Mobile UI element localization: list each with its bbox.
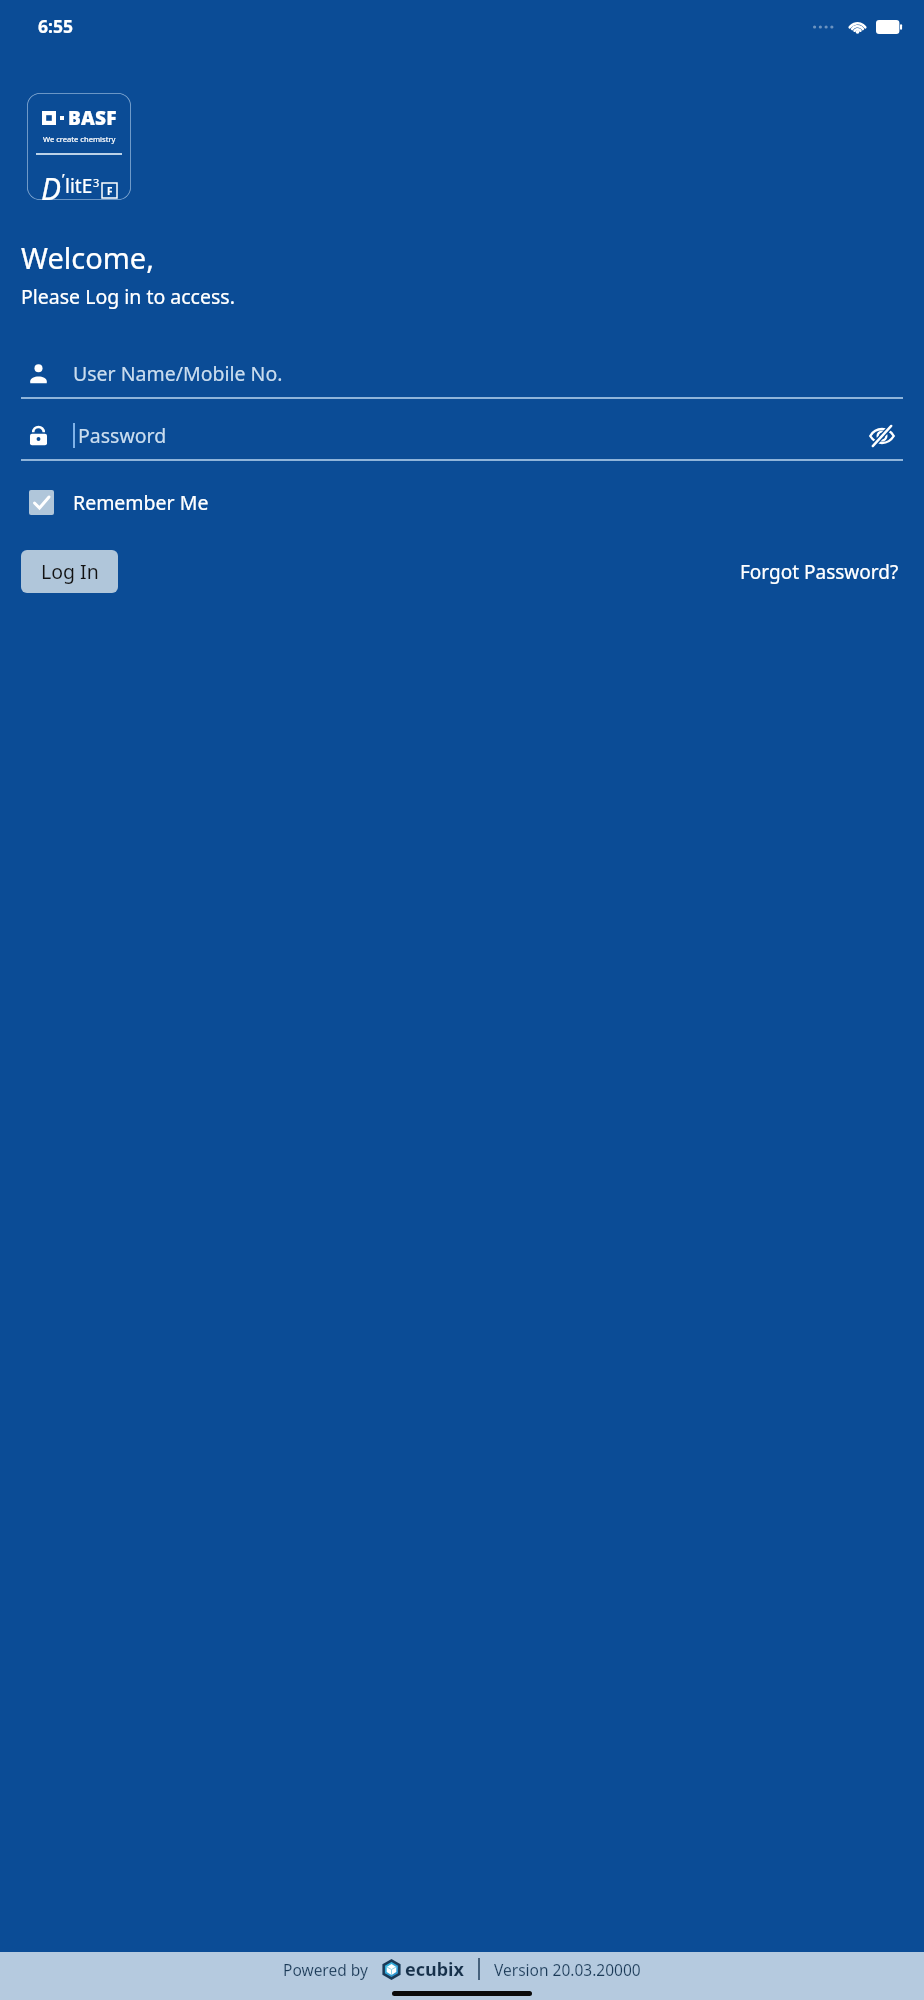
staticText: 3	[93, 175, 100, 190]
staticText: We create chemistry	[43, 134, 116, 144]
staticText: Remember Me	[73, 489, 209, 516]
button[interactable]: Forgot Password?	[736, 555, 903, 589]
staticText: Password	[78, 422, 167, 449]
button[interactable]: User Name/Mobile No.	[21, 350, 903, 399]
staticText: BASF	[68, 105, 117, 131]
staticText: Please Log in to access.	[21, 283, 235, 310]
staticText: Version 20.03.20000	[494, 1959, 641, 1980]
staticText: D	[41, 168, 62, 200]
staticText: Powered by	[283, 1959, 368, 1980]
staticText: F	[107, 184, 113, 198]
button[interactable]: Log In	[21, 550, 118, 593]
staticText: Log In	[41, 558, 99, 585]
staticText: ecubix	[405, 1957, 464, 1982]
staticText: User Name/Mobile No.	[73, 360, 283, 387]
button[interactable]: Password	[21, 412, 903, 461]
staticText: Forgot Password?	[740, 559, 899, 585]
staticText: ’	[62, 168, 65, 186]
staticText: litE	[65, 173, 93, 199]
button[interactable]: Show password	[861, 415, 903, 457]
staticText: 6:55	[38, 14, 73, 38]
button[interactable]: Remember Me	[21, 483, 215, 522]
staticText: Welcome,	[21, 238, 154, 277]
